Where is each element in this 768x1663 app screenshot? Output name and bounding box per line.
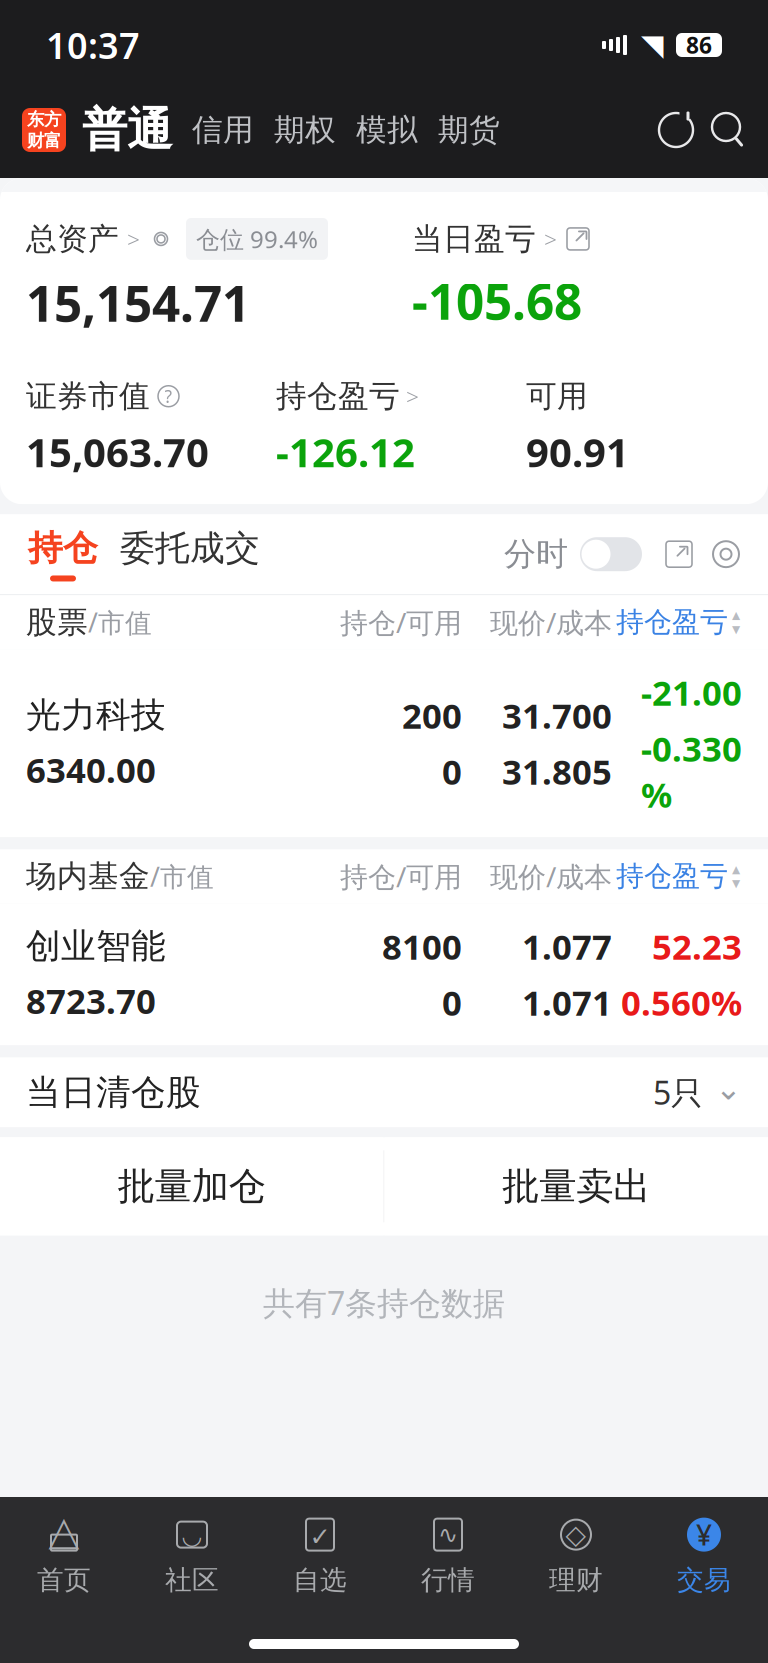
staticText: ◇ (565, 1519, 586, 1550)
button[interactable]: 期权 (264, 111, 346, 149)
staticText: 理财 (549, 1564, 603, 1596)
staticText: ◡ (181, 1522, 202, 1549)
staticText: ▲ (732, 609, 740, 621)
staticText: 行情 (421, 1564, 475, 1596)
staticText: 15,063.70 (26, 425, 209, 478)
button[interactable]: 委托成交 (120, 527, 260, 581)
staticText: 东方 (27, 109, 61, 130)
button[interactable]: 期货 (428, 111, 510, 149)
button[interactable]: 持仓盈亏 (276, 377, 526, 478)
staticText: 首页 (37, 1564, 91, 1596)
button[interactable]: 当日清仓股 (0, 1057, 768, 1127)
staticText: 52.23 (652, 923, 742, 969)
button[interactable]: 刷新 (656, 110, 696, 150)
staticText: 持仓 (28, 527, 98, 569)
button[interactable]: △ (0, 1507, 128, 1603)
staticText: 期权 (274, 111, 336, 149)
staticText: 当日盈亏 (412, 220, 536, 258)
staticText: 模拟 (356, 111, 418, 149)
staticText: 持仓/可用 (340, 858, 462, 895)
button[interactable]: 批量加仓 (0, 1137, 383, 1235)
staticText: 5只 (653, 1071, 703, 1114)
staticText: 86 (686, 30, 712, 60)
button[interactable]: 当日盈亏 (412, 220, 591, 258)
staticText: ⌄ (715, 1070, 742, 1106)
staticText: 8723.70 (26, 978, 156, 1024)
button[interactable]: 持仓 (26, 527, 120, 581)
staticText: -105.68 (412, 268, 582, 333)
staticText: ∿ (438, 1521, 458, 1548)
button[interactable]: ¥ (640, 1507, 768, 1603)
staticText: 0.560% (621, 979, 742, 1025)
staticText: /市值 (150, 859, 214, 894)
staticText: 光力科技 (26, 694, 166, 736)
staticText: -21.00 (641, 669, 742, 715)
staticText: 股票 (26, 603, 88, 641)
staticText: 社区 (165, 1564, 219, 1596)
button[interactable]: ◡ (128, 1507, 256, 1603)
button[interactable]: 分时 (504, 534, 642, 574)
staticText: 交易 (677, 1564, 731, 1596)
button[interactable]: ✓ (256, 1507, 384, 1603)
staticText: 现价/成本 (490, 858, 612, 895)
staticText: -126.12 (276, 425, 415, 478)
button[interactable]: 光力科技 (0, 649, 768, 837)
button[interactable]: 设置 (710, 538, 742, 570)
staticText: 当日清仓股 (26, 1071, 201, 1114)
staticText: ▼ (732, 877, 740, 889)
staticText: ▼ (732, 623, 740, 635)
staticText: 90.91 (526, 425, 629, 478)
staticText: ◥ (641, 28, 664, 62)
staticText: 批量卖出 (502, 1163, 650, 1209)
staticText: 200 (402, 692, 462, 738)
staticText: 批量加仓 (118, 1163, 266, 1209)
staticText: 8100 (382, 923, 462, 969)
staticText: 10:37 (46, 21, 140, 69)
button[interactable]: 创业智能 (0, 903, 768, 1045)
staticText: 6340.00 (26, 746, 156, 792)
staticText: 自选 (293, 1564, 347, 1596)
button[interactable]: 批量卖出 (384, 1137, 768, 1235)
button[interactable]: 普通 (66, 102, 182, 158)
staticText: 仓位 99.4% (196, 223, 318, 255)
staticText: -0.330% (641, 725, 742, 817)
button[interactable]: 东方财富 (22, 108, 66, 152)
button[interactable]: 搜索 (708, 110, 748, 150)
staticText: ¥ (696, 1516, 712, 1553)
staticText: 信用 (192, 111, 254, 149)
button[interactable]: 模拟 (346, 111, 428, 149)
staticText: 场内基金 (26, 857, 150, 895)
staticText: ✓ (309, 1522, 330, 1551)
staticText: △ (48, 1508, 79, 1553)
staticText: 持仓盈亏 (616, 605, 728, 639)
staticText: 0 (442, 748, 462, 794)
button[interactable]: ◇ (512, 1507, 640, 1603)
staticText: 共有7条持仓数据 (263, 1281, 505, 1324)
staticText: /市值 (88, 604, 152, 640)
staticText: 创业智能 (26, 925, 166, 968)
staticText: 总资产 (26, 220, 119, 258)
staticText: > (544, 224, 557, 254)
staticText: 可用 (526, 377, 588, 415)
staticText: 31.700 (502, 692, 612, 738)
staticText: 0 (442, 979, 462, 1025)
button[interactable]: 信用 (182, 111, 264, 149)
staticText: 1.071 (522, 979, 612, 1025)
staticText: 普通 (82, 102, 172, 158)
staticText: 15,154.71 (26, 270, 250, 335)
staticText: 31.805 (502, 748, 612, 794)
staticText: ? (164, 385, 172, 408)
staticText: 1.077 (522, 923, 612, 969)
staticText: > (406, 381, 419, 411)
staticText: 证券市值 (26, 377, 150, 415)
staticText: 持仓盈亏 (616, 859, 728, 893)
staticText: > (127, 224, 140, 254)
staticText: 期货 (438, 111, 500, 149)
button[interactable]: ∿ (384, 1507, 512, 1603)
staticText: 持仓/可用 (340, 604, 462, 641)
button[interactable]: 导出 (664, 539, 694, 569)
staticText: 财富 (27, 130, 61, 151)
staticText: 持仓盈亏 (276, 377, 400, 415)
button[interactable]: 总资产 (26, 218, 328, 260)
staticText: 委托成交 (120, 527, 260, 569)
